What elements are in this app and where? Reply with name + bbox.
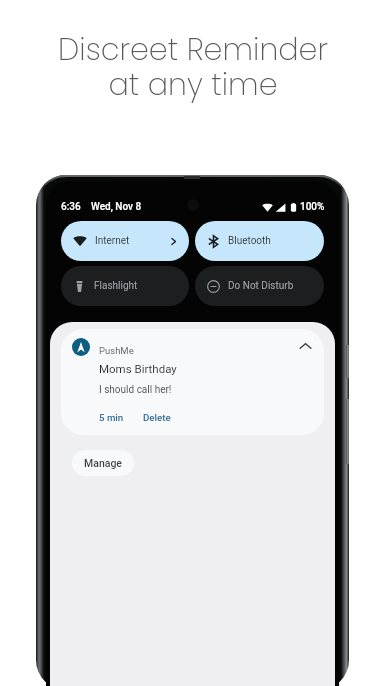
staticText: PushMe — [99, 345, 134, 356]
staticText: Flashlight — [94, 280, 138, 292]
button[interactable]: Collapse notification — [298, 339, 313, 354]
button[interactable]: Do Not Disturb — [195, 266, 324, 306]
button[interactable]: Flashlight — [61, 266, 189, 306]
button[interactable]: Internet — [61, 221, 189, 261]
button[interactable]: Collapse notification — [61, 329, 324, 435]
staticText: Delete — [143, 412, 171, 423]
staticText: Manage — [84, 457, 122, 469]
button[interactable]: Bluetooth — [195, 221, 324, 261]
staticText: 5 min — [99, 412, 124, 423]
button[interactable]: Manage — [72, 450, 134, 476]
staticText: Do Not Disturb — [228, 280, 294, 292]
staticText: Bluetooth — [228, 235, 271, 247]
button[interactable]: Delete — [143, 412, 171, 423]
staticText: Internet — [95, 235, 130, 247]
staticText: 100% — [300, 201, 325, 213]
button[interactable]: 5 min — [99, 412, 124, 423]
staticText: 6:36 — [61, 201, 81, 213]
staticText: Discreet Reminder at any time — [58, 28, 328, 105]
staticText: Wed, Nov 8 — [91, 201, 142, 213]
staticText: I should call her! — [99, 384, 172, 396]
staticText: Moms Birthday — [99, 362, 177, 375]
